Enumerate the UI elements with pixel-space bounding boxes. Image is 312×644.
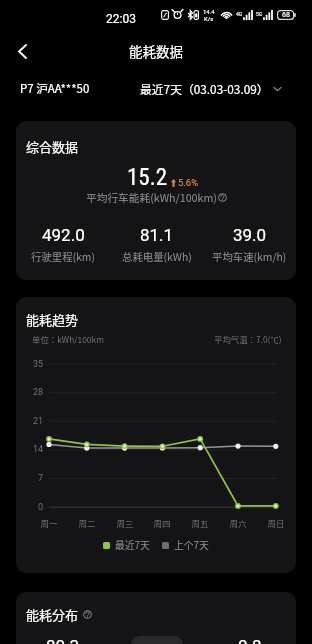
staticText: 平均行车能耗(kWh/100km) bbox=[86, 190, 217, 205]
staticText: 最近7天 bbox=[115, 538, 150, 552]
staticText: 平均气温：7.0(℃) bbox=[214, 333, 282, 345]
staticText: 0.8 bbox=[238, 636, 262, 644]
staticText: 周六 bbox=[225, 517, 251, 529]
staticText: 14.4 bbox=[203, 8, 215, 15]
staticText: 39.0 bbox=[233, 225, 267, 245]
staticText: 0 bbox=[21, 502, 43, 513]
staticText: 综合数据 bbox=[26, 137, 79, 156]
staticText: 7 bbox=[21, 473, 43, 484]
staticText: 上个7天 bbox=[174, 538, 209, 552]
button[interactable]: Back bbox=[7, 36, 37, 66]
staticText: 能耗分布 bbox=[26, 605, 79, 624]
staticText: 35 bbox=[21, 359, 43, 370]
staticText: 单位：kWh/100km bbox=[32, 333, 104, 345]
staticText: 4G bbox=[236, 11, 243, 17]
staticText: 28 bbox=[21, 387, 43, 398]
staticText: 平均车速(km/h) bbox=[212, 249, 287, 264]
staticText: 周四 bbox=[149, 517, 175, 529]
staticText: 最近7天（03.03-03.09） bbox=[140, 80, 269, 97]
button[interactable]: P7 沪AA***50 bbox=[20, 80, 90, 97]
staticText: 行驶里程(km) bbox=[31, 249, 95, 264]
staticText: 15.2 bbox=[127, 164, 168, 191]
button[interactable]: 最近7天（03.03-03.09） bbox=[140, 80, 282, 97]
staticText: 22:03 bbox=[106, 12, 136, 26]
staticText: 21 bbox=[21, 416, 43, 427]
staticText: 68 bbox=[282, 11, 290, 19]
staticText: 周三 bbox=[112, 517, 138, 529]
staticText: 492.0 bbox=[42, 225, 85, 245]
staticText: 周一 bbox=[36, 517, 62, 529]
staticText: 总耗电量(kWh) bbox=[122, 249, 192, 264]
staticText: 周二 bbox=[74, 517, 100, 529]
staticText: 能耗数据 bbox=[129, 41, 183, 61]
staticText: K/s bbox=[204, 15, 214, 21]
staticText: 5G bbox=[256, 11, 263, 17]
staticText: 81.1 bbox=[140, 225, 174, 245]
button[interactable] bbox=[131, 636, 183, 644]
staticText: 周日 bbox=[263, 517, 289, 529]
staticText: 14 bbox=[21, 444, 43, 455]
staticText: 80.3 bbox=[46, 636, 80, 644]
staticText: 能耗趋势 bbox=[26, 310, 79, 329]
staticText: 周五 bbox=[187, 517, 213, 529]
staticText: 5.6% bbox=[178, 177, 199, 188]
